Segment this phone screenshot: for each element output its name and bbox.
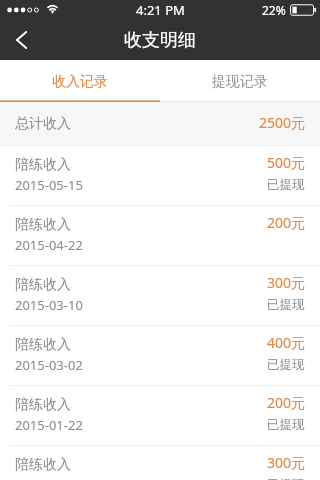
staticText: 4:21 PM (136, 1, 185, 19)
staticText: 陪练收入 (15, 156, 71, 174)
staticText: 2015-03-02 (15, 356, 83, 374)
staticText: 收入记录 (52, 73, 108, 91)
staticText: 总计收入 (15, 115, 71, 133)
staticText: 300元 (267, 273, 306, 292)
staticText: 400元 (267, 333, 306, 352)
staticText: 2015-05-15 (15, 176, 83, 194)
staticText: 陪练收入 (15, 216, 71, 234)
staticText: 已提现 (267, 477, 305, 480)
button[interactable]: 陪练收入 (0, 386, 320, 446)
staticText: 2015-03-10 (15, 296, 83, 314)
staticText: 22% (262, 2, 286, 18)
staticText: 已提现 (267, 297, 305, 313)
staticText: 陪练收入 (15, 336, 71, 354)
button[interactable]: 提现记录 (160, 60, 320, 103)
button[interactable]: 陪练收入 (0, 206, 320, 266)
button[interactable]: 陪练收入 (0, 446, 320, 480)
button[interactable]: 陪练收入 (0, 326, 320, 386)
staticText: 陪练收入 (15, 276, 71, 294)
button[interactable]: 收入记录 (0, 60, 160, 103)
button[interactable]: 陪练收入 (0, 266, 320, 326)
staticText: 收支明细 (124, 29, 196, 52)
staticText: 2015-04-22 (15, 236, 83, 254)
staticText: 已提现 (267, 177, 305, 193)
staticText: 陪练收入 (15, 396, 71, 414)
button[interactable]: Back (0, 20, 46, 60)
button[interactable]: 陪练收入 (0, 146, 320, 206)
staticText: 500元 (267, 153, 306, 172)
staticText: 200元 (267, 213, 306, 232)
staticText: 300元 (267, 453, 306, 472)
staticText: 200元 (267, 393, 306, 412)
staticText: 2015-01-22 (15, 416, 83, 434)
staticText: 陪练收入 (15, 456, 71, 474)
staticText: 已提现 (267, 417, 305, 433)
staticText: 2500元 (259, 113, 306, 132)
staticText: 已提现 (267, 357, 305, 373)
staticText: 提现记录 (212, 73, 268, 91)
